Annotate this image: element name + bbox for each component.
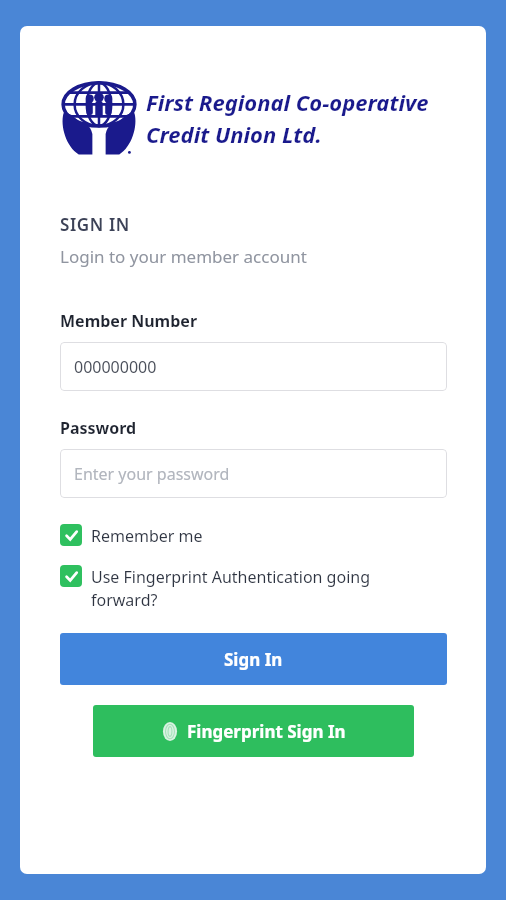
staticText: Remember me (91, 525, 203, 547)
staticText: Sign In (224, 648, 283, 671)
button[interactable]: Sign In (60, 633, 447, 685)
staticText: Fingerprint Sign In (187, 720, 346, 743)
button[interactable]: Fingerprint Sign In (93, 705, 414, 757)
button[interactable]: 000000000 (60, 342, 447, 391)
staticText: 000000000 (74, 356, 157, 378)
staticText: Use Fingerprint Authentication going for… (91, 566, 425, 611)
staticText: First Regional Co-operative (146, 87, 429, 117)
button[interactable]: Remember me (60, 524, 447, 547)
staticText: Member Number (60, 310, 198, 332)
staticText: Password (60, 417, 137, 439)
staticText: Login to your member account (60, 245, 307, 268)
staticText: Enter your password (74, 463, 230, 485)
button[interactable]: Enter your password (60, 449, 447, 498)
staticText: SIGN IN (60, 213, 130, 236)
staticText: Credit Union Ltd. (146, 119, 322, 149)
button[interactable]: Use Fingerprint Authentication going for… (60, 565, 447, 611)
